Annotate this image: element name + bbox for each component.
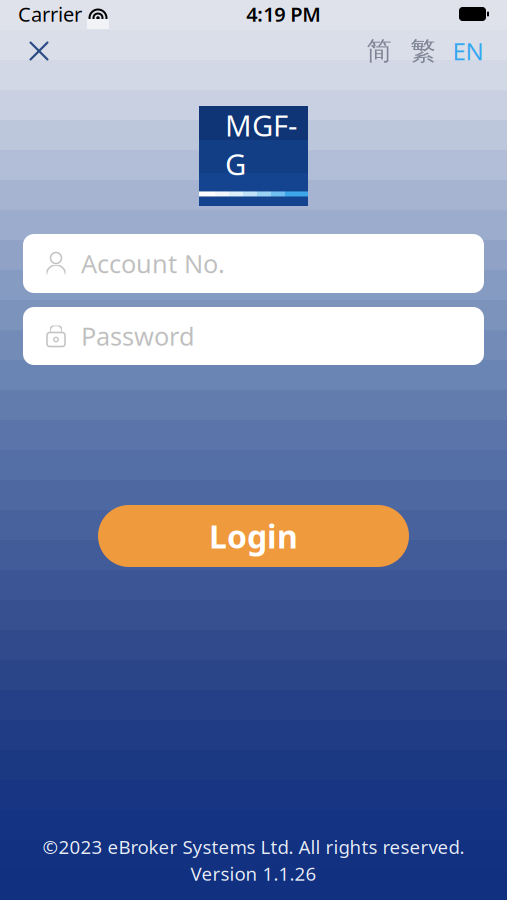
- staticText: Login: [209, 515, 298, 557]
- staticText: Version 1.1.26: [190, 861, 316, 886]
- button[interactable]: Close: [16, 28, 62, 74]
- staticText: 简: [366, 35, 391, 66]
- button[interactable]: 繁: [401, 31, 445, 71]
- staticText: Password: [81, 319, 195, 353]
- staticText: Carrier: [18, 1, 82, 27]
- button[interactable]: 简: [357, 31, 401, 71]
- staticText: ©2023 eBroker Systems Ltd. All rights re…: [42, 834, 464, 859]
- button[interactable]: EN: [445, 31, 491, 71]
- staticText: Account No.: [81, 247, 225, 280]
- staticText: 繁: [410, 35, 435, 66]
- staticText: EN: [452, 35, 483, 67]
- staticText: MGFG: [225, 105, 297, 183]
- staticText: 4:19 PM: [246, 1, 321, 27]
- button[interactable]: Login: [98, 505, 409, 567]
